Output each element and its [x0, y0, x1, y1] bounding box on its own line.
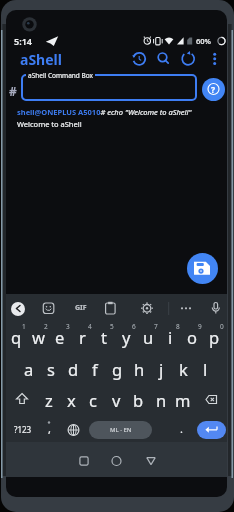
staticText: j — [159, 358, 164, 380]
staticText: m — [175, 389, 191, 411]
staticText: 60% — [196, 36, 211, 46]
button[interactable] — [102, 300, 119, 317]
button[interactable]: g — [106, 356, 128, 382]
staticText: h — [134, 358, 145, 380]
staticText: e — [55, 326, 65, 348]
button[interactable] — [63, 419, 84, 440]
button[interactable] — [197, 421, 226, 439]
button[interactable] — [21, 74, 197, 101]
button[interactable]: e — [49, 324, 71, 350]
staticText: n — [156, 389, 167, 411]
button[interactable] — [40, 300, 57, 317]
button[interactable] — [102, 452, 130, 477]
staticText: k — [179, 358, 188, 380]
staticText: l — [203, 358, 208, 380]
button[interactable] — [200, 389, 221, 410]
staticText: Welcome to aShell — [17, 119, 82, 129]
button[interactable] — [137, 452, 165, 477]
staticText: aShell Command Box — [28, 71, 93, 80]
staticText: f — [92, 358, 98, 380]
button[interactable]: c — [82, 387, 104, 413]
button[interactable]: v — [105, 387, 127, 413]
button[interactable]: s — [40, 356, 62, 382]
button[interactable]: , — [42, 420, 56, 437]
button[interactable]: . — [174, 420, 188, 437]
staticText: . — [180, 421, 183, 436]
staticText: 8 — [176, 322, 180, 331]
button[interactable]: t — [93, 324, 115, 350]
button[interactable]: ?123 — [11, 421, 35, 438]
staticText: 4 — [88, 322, 92, 331]
button[interactable] — [130, 50, 148, 68]
staticText: shell@ONEPLUS A5010# echo "Welcome to aS… — [17, 107, 192, 117]
button[interactable]: m — [172, 387, 194, 413]
staticText: GIF — [75, 303, 87, 313]
staticText: 1 — [22, 322, 26, 331]
staticText: u — [143, 326, 154, 348]
staticText: d — [68, 358, 79, 380]
button[interactable]: n — [150, 387, 172, 413]
staticText: 2 — [44, 322, 48, 331]
button[interactable] — [207, 300, 224, 317]
staticText: g — [112, 358, 123, 380]
staticText: z — [45, 389, 53, 411]
staticText: 7 — [154, 322, 158, 331]
staticText: t — [101, 326, 107, 348]
button[interactable] — [179, 50, 197, 68]
staticText: v — [112, 389, 121, 411]
staticText: 5 — [110, 322, 114, 331]
button[interactable] — [138, 300, 155, 317]
staticText: r — [79, 326, 86, 348]
button[interactable]: d — [62, 356, 84, 382]
button[interactable]: y — [115, 324, 137, 350]
button[interactable] — [154, 50, 172, 68]
staticText: 3 — [66, 322, 70, 331]
staticText: 0 — [220, 322, 224, 331]
button[interactable]: q — [6, 324, 27, 350]
staticText: i — [168, 326, 173, 348]
staticText: a — [24, 358, 34, 380]
staticText: x — [67, 389, 76, 411]
button[interactable]: ? — [202, 78, 225, 101]
staticText: p — [209, 326, 220, 348]
button[interactable]: j — [150, 356, 172, 382]
button[interactable]: z — [38, 387, 60, 413]
button[interactable]: x — [60, 387, 82, 413]
button[interactable]: w — [27, 324, 49, 350]
staticText: w — [32, 326, 45, 348]
button[interactable] — [177, 300, 194, 317]
button[interactable]: l — [194, 356, 216, 382]
staticText: ?123 — [14, 424, 32, 435]
staticText: ? — [211, 84, 216, 96]
staticText: c — [89, 389, 97, 411]
button[interactable]: k — [172, 356, 194, 382]
button[interactable] — [11, 302, 25, 316]
button[interactable]: f — [84, 356, 106, 382]
button[interactable]: r — [71, 324, 93, 350]
button[interactable] — [70, 452, 98, 477]
staticText: b — [133, 389, 144, 411]
button[interactable] — [206, 50, 223, 68]
staticText: aShell — [20, 50, 62, 69]
button[interactable]: h — [128, 356, 150, 382]
button[interactable]: b — [127, 387, 149, 413]
button[interactable]: i — [159, 324, 181, 350]
staticText: , — [48, 421, 51, 436]
button[interactable]: a — [18, 356, 40, 382]
button[interactable]: u — [137, 324, 159, 350]
staticText: s — [47, 358, 55, 380]
staticText: ML · EN — [110, 426, 132, 434]
button[interactable]: ML · EN — [89, 421, 152, 439]
staticText: o — [187, 326, 197, 348]
button[interactable] — [187, 253, 218, 284]
button[interactable]: o — [181, 324, 203, 350]
button[interactable]: p — [203, 324, 225, 350]
staticText: # — [9, 83, 17, 99]
button[interactable] — [12, 389, 33, 410]
staticText: y — [122, 326, 131, 348]
staticText: q — [11, 326, 22, 348]
staticText: 6 — [132, 322, 136, 331]
staticText: 5:14 — [14, 35, 32, 47]
staticText: 9 — [198, 322, 202, 331]
